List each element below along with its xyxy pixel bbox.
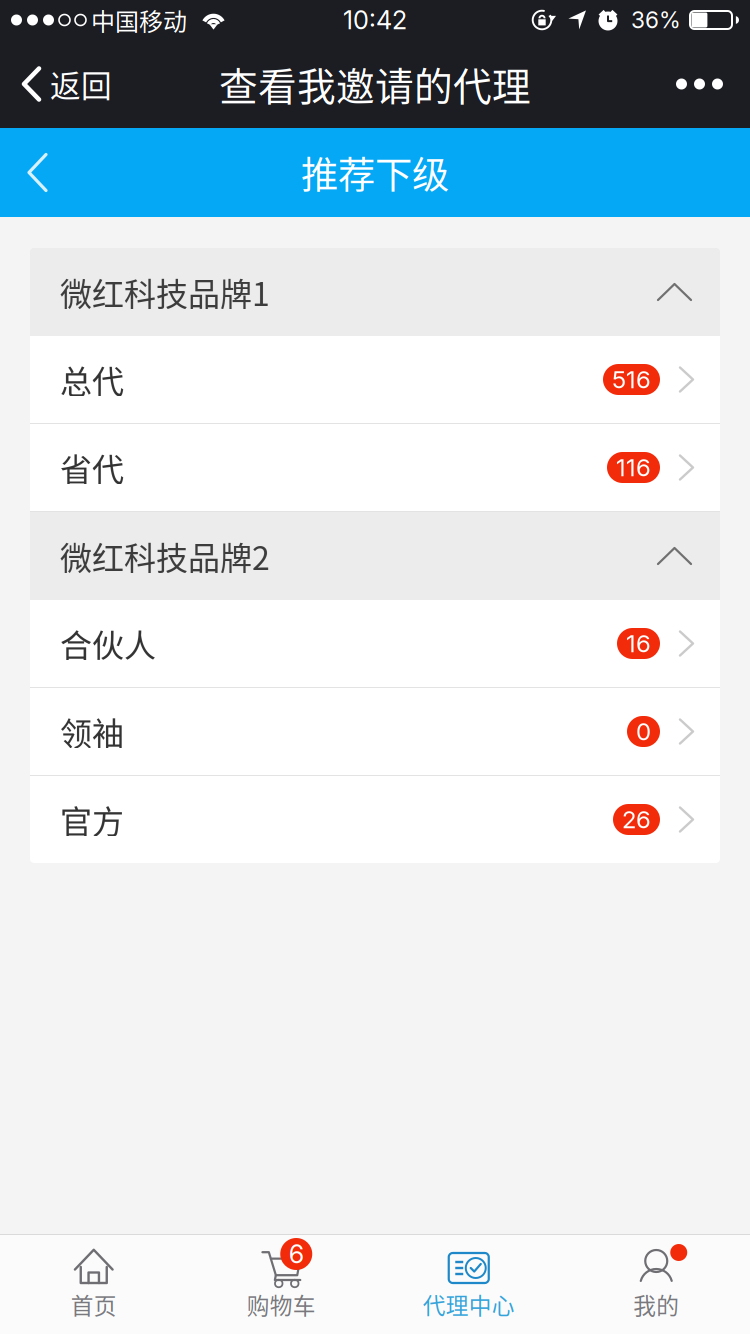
staticText: 中国移动 <box>91 3 187 37</box>
staticText: 微红科技品牌2 <box>60 533 270 579</box>
staticText: 516 <box>612 365 651 394</box>
staticText: 领袖 <box>60 708 124 755</box>
staticText: 6 <box>289 1239 304 1269</box>
button[interactable]: 领袖 <box>30 688 720 775</box>
staticText: 官方 <box>60 796 124 843</box>
staticText: 26 <box>622 805 651 834</box>
button[interactable]: 我的 <box>562 1235 750 1334</box>
button[interactable]: 返回 <box>0 40 130 128</box>
staticText: 省代 <box>60 444 124 491</box>
staticText: 微红科技品牌1 <box>60 269 270 315</box>
button[interactable]: 微红科技品牌2 <box>30 512 720 600</box>
button[interactable]: Back <box>0 128 70 217</box>
staticText: 购物车 <box>247 1288 316 1321</box>
button[interactable]: 省代 <box>30 424 720 511</box>
staticText: 16 <box>626 629 651 658</box>
button[interactable]: 微红科技品牌1 <box>30 248 720 336</box>
button[interactable]: 6 <box>187 1235 375 1334</box>
button[interactable]: 官方 <box>30 776 720 863</box>
button[interactable]: 合伙人 <box>30 600 720 687</box>
button[interactable]: 首页 <box>0 1235 187 1334</box>
staticText: 10:42 <box>343 5 407 35</box>
staticText: 0 <box>636 717 651 746</box>
staticText: 代理中心 <box>423 1288 515 1321</box>
staticText: 合伙人 <box>60 620 156 667</box>
button[interactable]: 代理中心 <box>375 1235 562 1334</box>
staticText: 36% <box>631 6 681 34</box>
staticText: 推荐下级 <box>301 145 449 200</box>
button[interactable]: More options <box>654 40 750 128</box>
staticText: 116 <box>616 453 651 482</box>
staticText: 首页 <box>71 1288 117 1321</box>
staticText: 返回 <box>50 62 112 106</box>
staticText: 总代 <box>60 356 124 403</box>
button[interactable]: 总代 <box>30 336 720 423</box>
staticText: 我的 <box>633 1288 679 1321</box>
staticText: 查看我邀请的代理 <box>219 56 531 112</box>
